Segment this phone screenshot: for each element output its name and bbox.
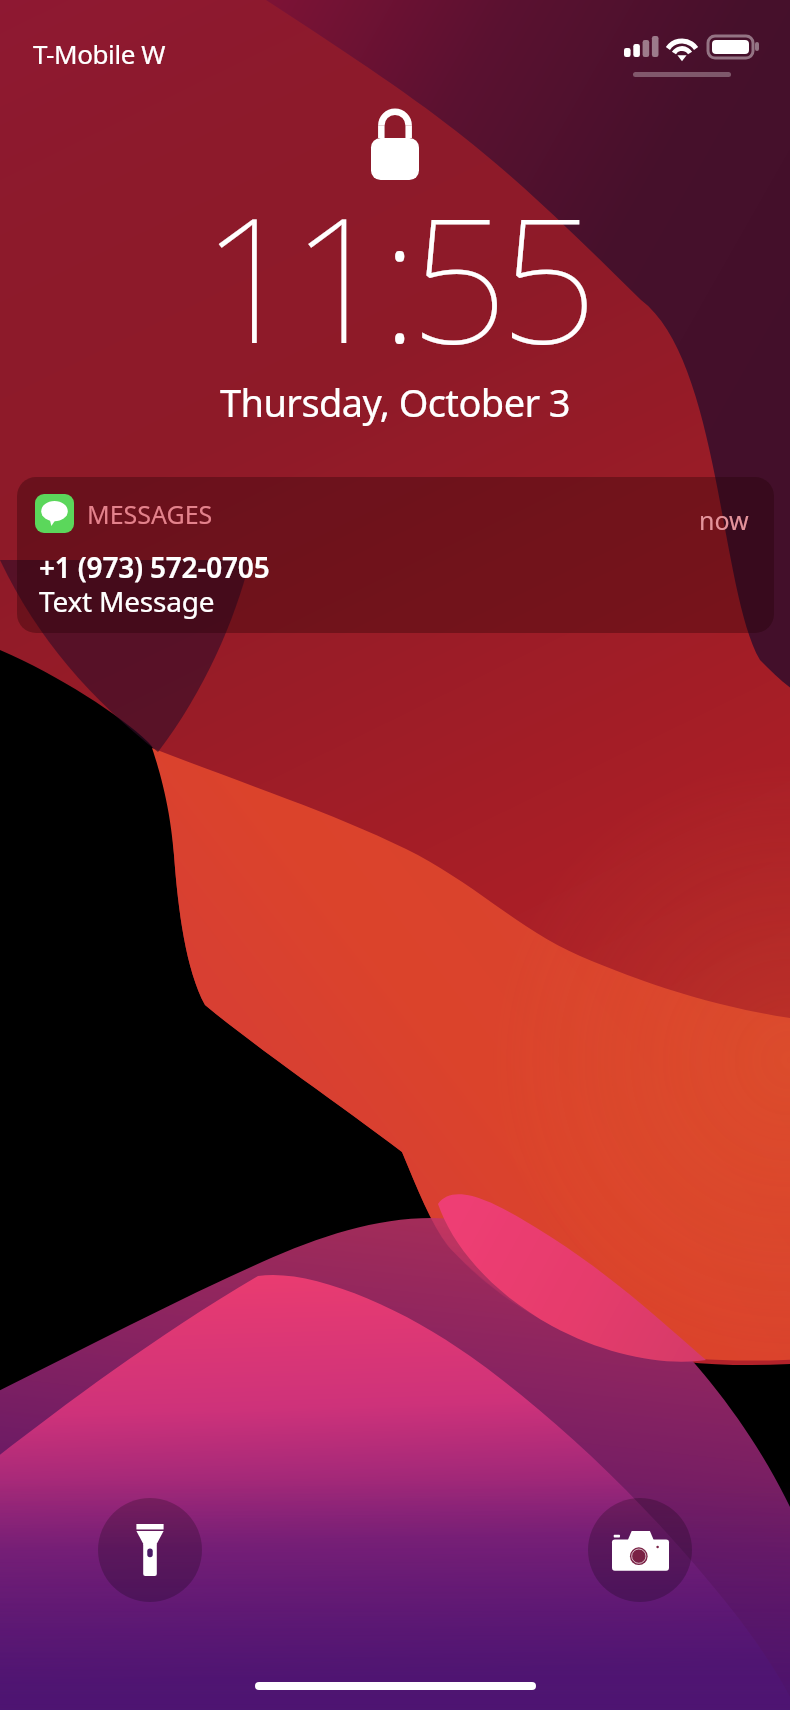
staticText: now bbox=[699, 503, 749, 537]
staticText: MESSAGES bbox=[87, 497, 213, 531]
button[interactable]: Flashlight bbox=[98, 1498, 202, 1602]
staticText: Text Message bbox=[39, 582, 215, 620]
staticText: T-Mobile W bbox=[33, 36, 166, 71]
button[interactable]: MESSAGES bbox=[17, 477, 774, 633]
staticText: Thursday, October 3 bbox=[220, 376, 570, 428]
staticText: +1 (973) 572-0705 bbox=[39, 548, 270, 586]
staticText: 11:55 bbox=[201, 158, 589, 394]
button[interactable]: Camera bbox=[588, 1498, 692, 1602]
